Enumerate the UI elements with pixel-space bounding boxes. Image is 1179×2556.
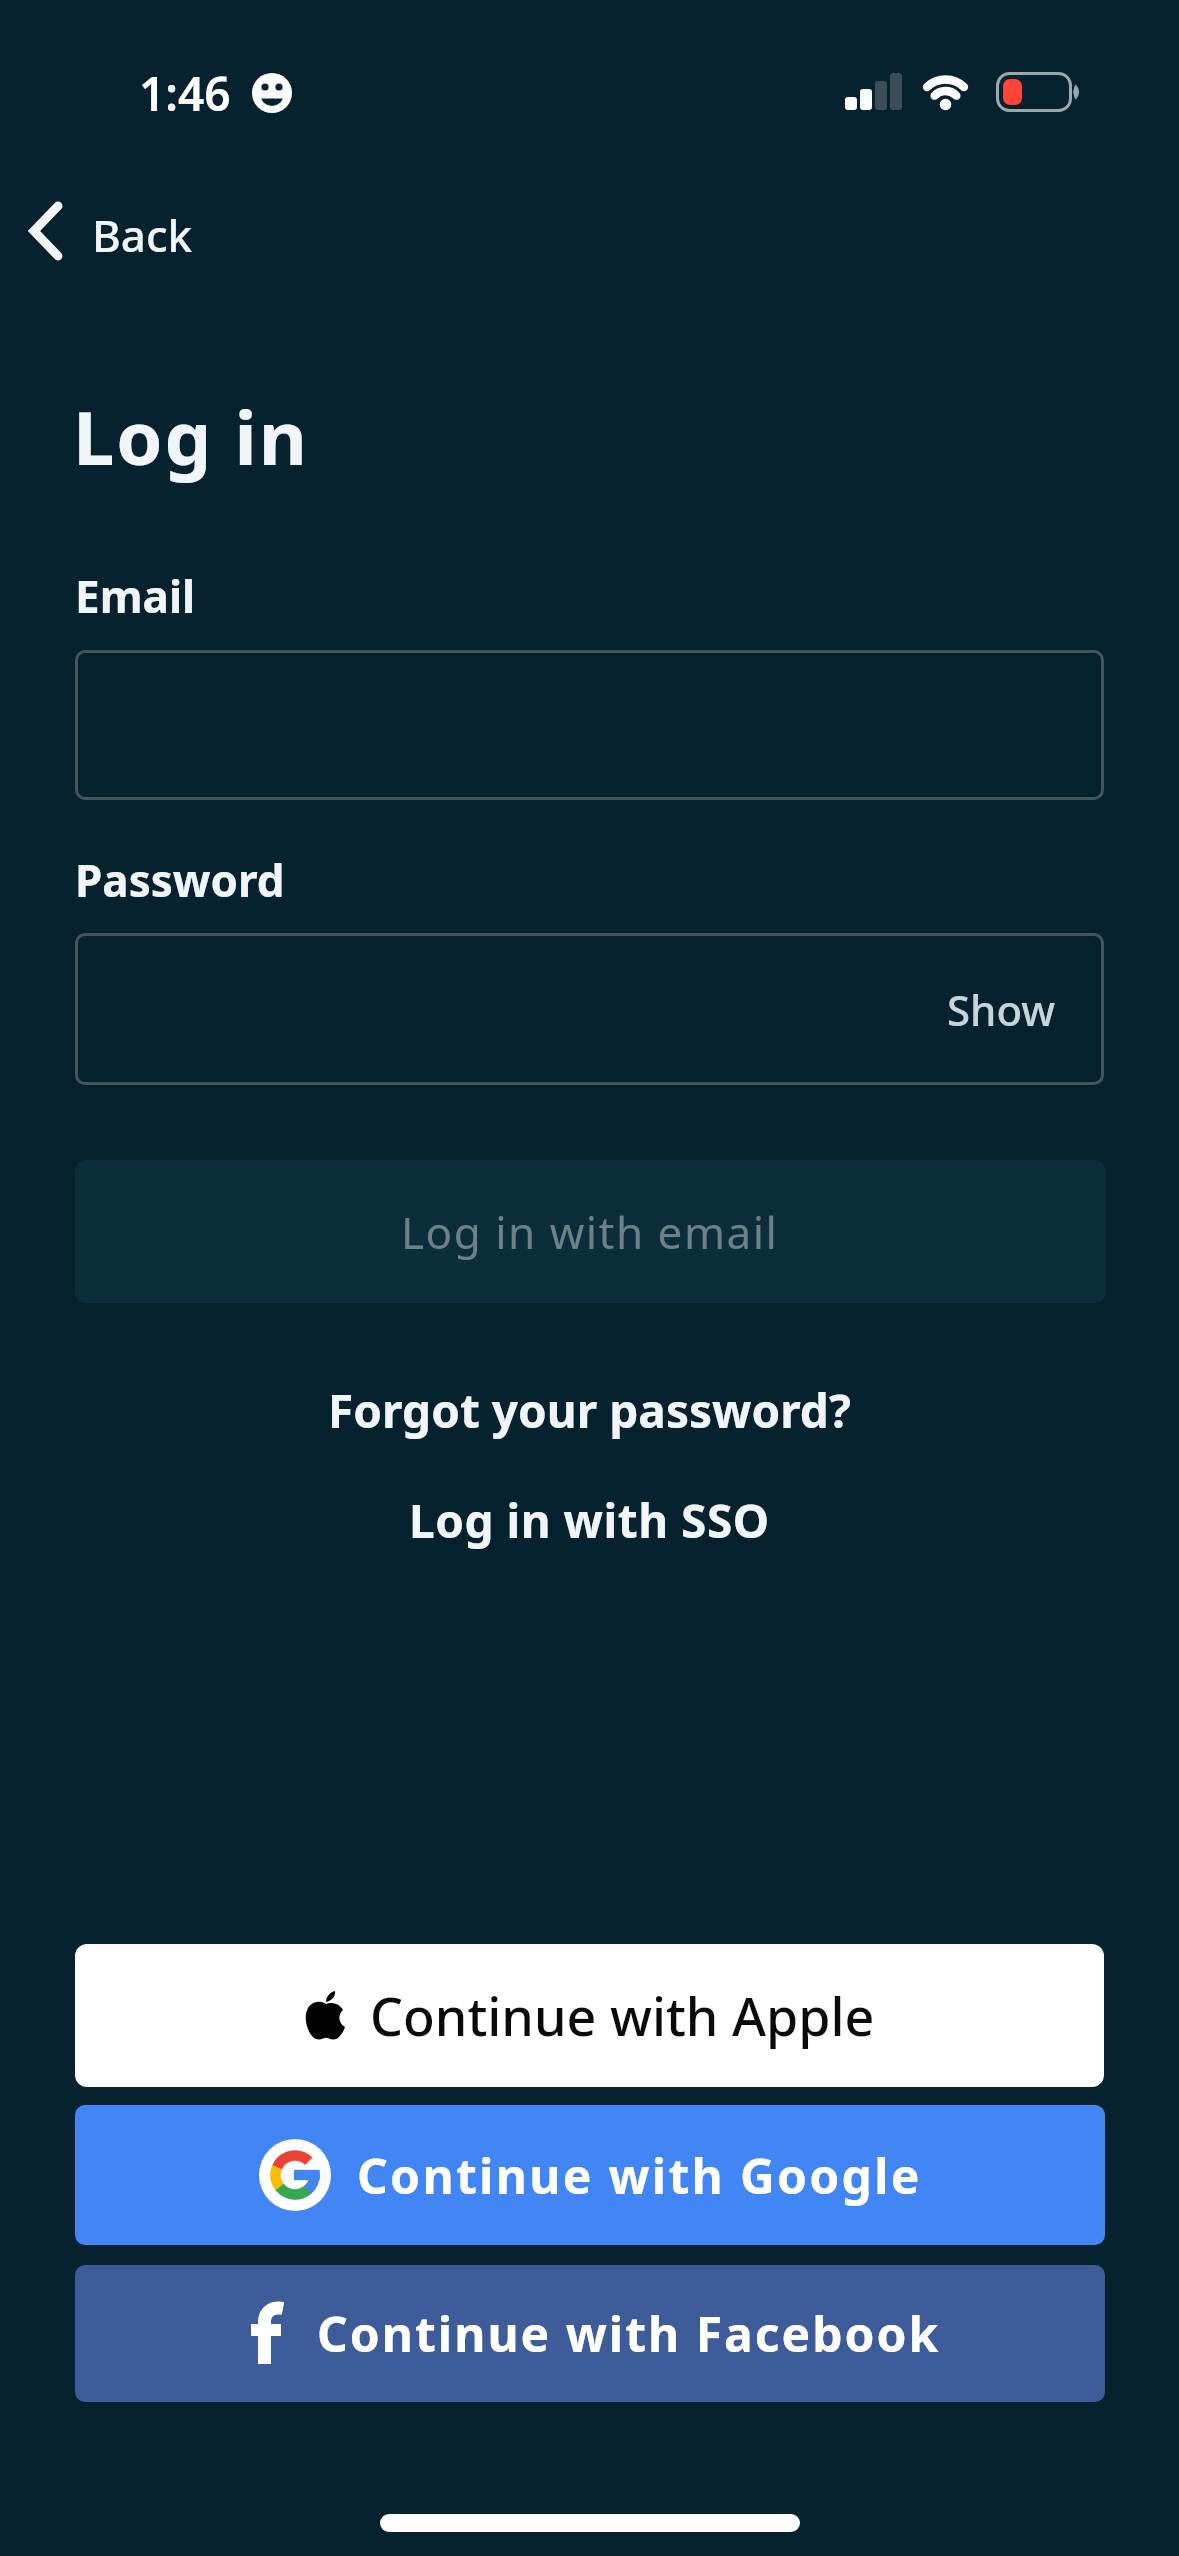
staticText: Forgot your password?	[328, 1379, 851, 1442]
staticText: Log in with SSO	[409, 1489, 770, 1552]
button[interactable]: Continue with Apple	[75, 1944, 1104, 2087]
staticText: Continue with Google	[357, 2143, 922, 2208]
staticText: Show	[947, 981, 1056, 1038]
staticText: Back	[92, 205, 193, 265]
button[interactable]: Continue with Facebook	[75, 2265, 1105, 2402]
staticText: Email	[75, 566, 196, 626]
button[interactable]: Continue with Google	[75, 2105, 1105, 2245]
button[interactable]: Forgot your password?	[0, 1370, 1179, 1450]
button[interactable]: Log in with SSO	[0, 1480, 1179, 1560]
staticText: Log in with email	[401, 1202, 779, 1262]
button[interactable]	[75, 650, 1104, 800]
button[interactable]: Show	[75, 933, 1104, 1085]
staticText: Continue with Apple	[370, 1980, 875, 2051]
button[interactable]: Back	[20, 195, 250, 275]
staticText: 1:46	[139, 62, 231, 125]
staticText: Continue with Facebook	[317, 2301, 941, 2366]
staticText: Log in	[73, 386, 309, 487]
staticText: Password	[75, 850, 285, 910]
button[interactable]: Log in with email	[75, 1160, 1105, 1303]
